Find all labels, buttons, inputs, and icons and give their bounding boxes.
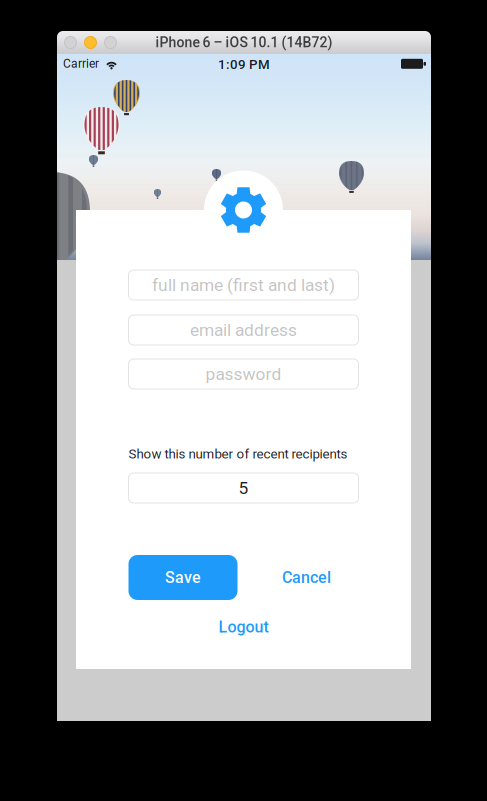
button[interactable]: Close	[64, 36, 76, 48]
staticText: Cancel	[282, 568, 331, 587]
button[interactable]: Cancel	[254, 555, 358, 600]
button[interactable]: full name (first and last)	[128, 270, 358, 300]
staticText: 1:09 PM	[218, 57, 270, 72]
staticText: password	[205, 364, 281, 384]
staticText: full name (first and last)	[152, 275, 335, 295]
staticText: Carrier	[63, 56, 99, 71]
staticText: Logout	[218, 618, 268, 636]
button[interactable]: email address	[128, 315, 358, 345]
staticText: Save	[165, 568, 201, 587]
staticText: email address	[190, 320, 297, 340]
staticText: 5	[238, 478, 248, 498]
button[interactable]: Zoom	[104, 36, 116, 48]
staticText: iPhone 6 – iOS 10.1 (14B72)	[155, 34, 332, 51]
button[interactable]: Minimize	[84, 36, 96, 48]
button[interactable]: Save	[128, 555, 237, 600]
staticText: Show this number of recent recipients	[128, 446, 347, 462]
button[interactable]: password	[128, 359, 358, 389]
button[interactable]: Logout	[183, 613, 303, 641]
